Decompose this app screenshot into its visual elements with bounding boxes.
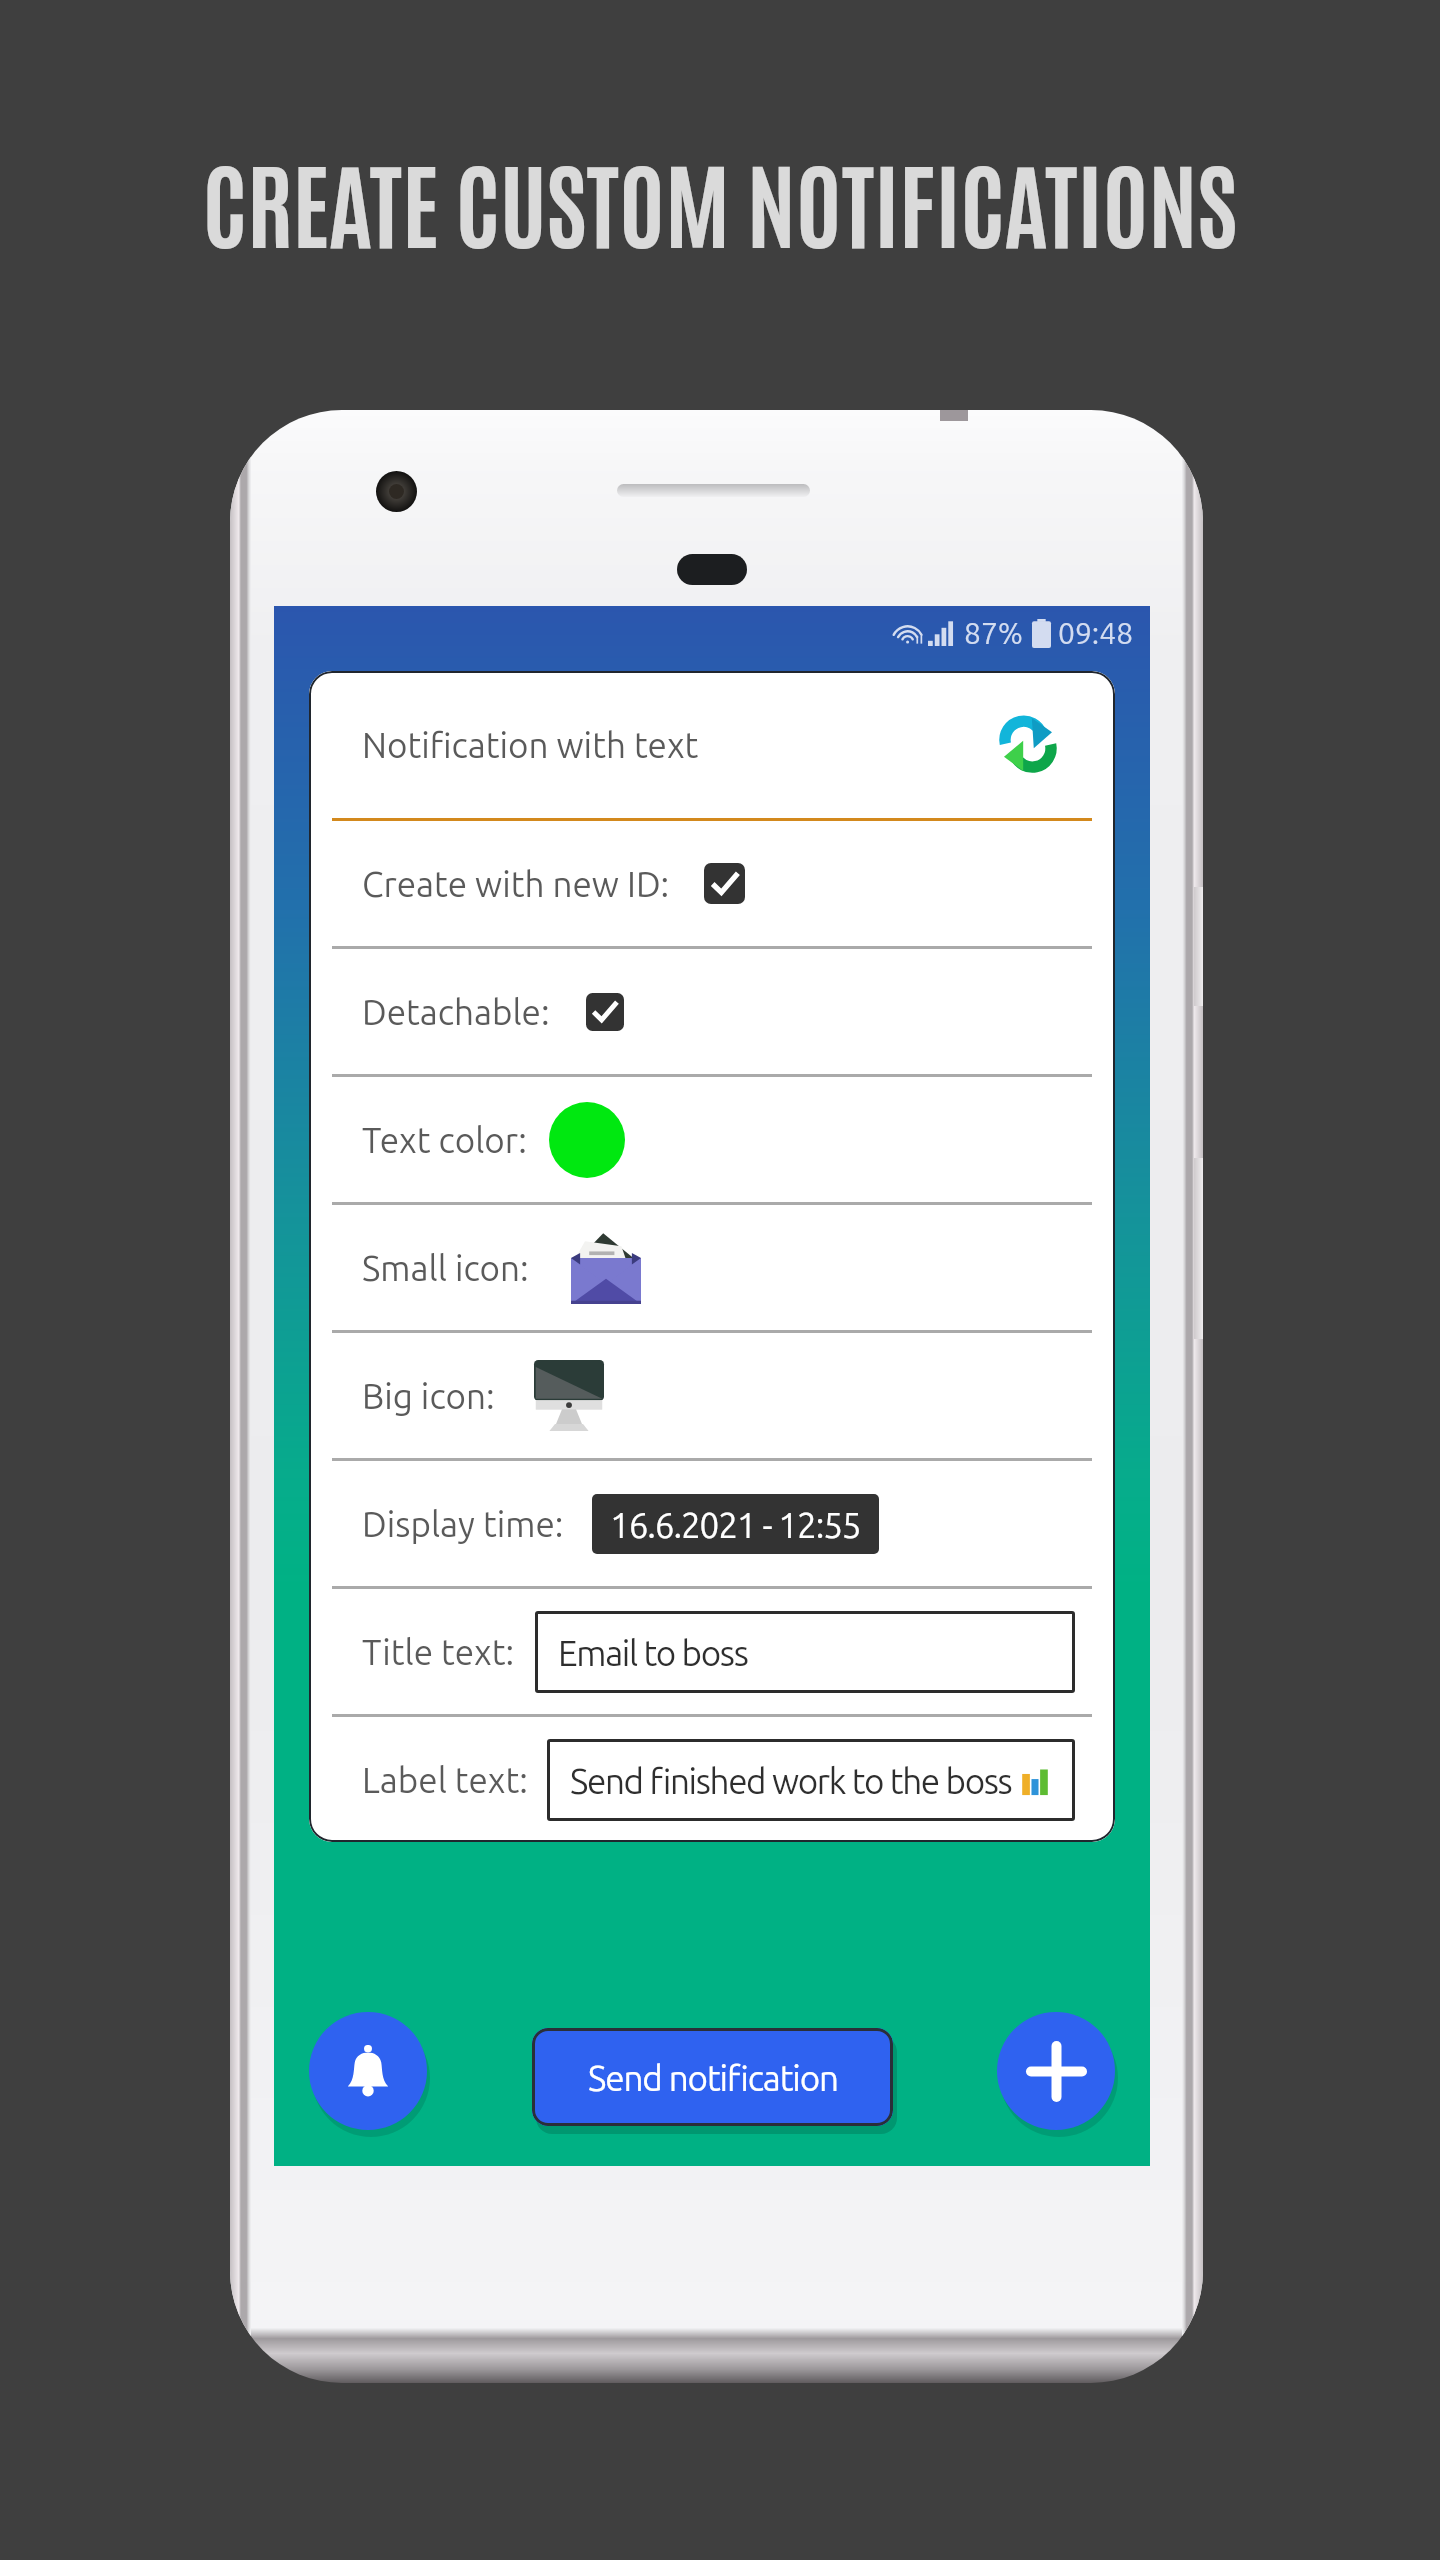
staticText: 87% xyxy=(964,616,1024,650)
button[interactable]: 16.6.2021 - 12:55 xyxy=(592,1494,879,1554)
staticText: Big icon: xyxy=(362,1376,495,1415)
button[interactable]: Detachable: xyxy=(309,949,1115,1074)
other: Sync xyxy=(1004,718,1052,771)
button[interactable]: Email to boss xyxy=(535,1611,1075,1693)
staticText: Send finished work to the boss xyxy=(570,1761,1019,1800)
button[interactable]: Label text: xyxy=(309,1717,1115,1842)
staticText: Email to boss xyxy=(558,1633,748,1672)
staticText: Send notification xyxy=(588,2058,838,2097)
button[interactable]: Display time: xyxy=(309,1461,1115,1586)
button[interactable]: Add notification xyxy=(997,2012,1115,2130)
staticText: Text color: xyxy=(362,1120,527,1159)
button[interactable]: Toggle xyxy=(586,993,624,1031)
button[interactable]: Send notification xyxy=(532,2028,893,2126)
staticText: 09:48 xyxy=(1058,616,1134,650)
button[interactable]: Small icon: xyxy=(309,1205,1115,1330)
button[interactable]: Create with new ID: xyxy=(309,821,1115,946)
staticText: Detachable: xyxy=(362,992,550,1031)
button[interactable]: Toggle xyxy=(704,863,745,904)
staticText: 16.6.2021 - 12:55 xyxy=(610,1505,861,1544)
button[interactable]: Show notifications xyxy=(309,2012,427,2130)
staticText: Title text: xyxy=(362,1632,515,1671)
button[interactable] xyxy=(549,1102,625,1178)
staticText: Create with new ID: xyxy=(362,864,670,903)
staticText: Label text: xyxy=(362,1760,528,1799)
staticText: CREATE CUSTOM NOTIFICATIONS xyxy=(202,139,1238,261)
button[interactable]: Send finished work to the boss xyxy=(547,1739,1075,1821)
button[interactable]: Title text: xyxy=(309,1589,1115,1714)
staticText: Small icon: xyxy=(362,1248,529,1287)
staticText: Display time: xyxy=(362,1504,564,1543)
button[interactable]: Text color: xyxy=(309,1077,1115,1202)
button[interactable]: Big icon: xyxy=(309,1333,1115,1458)
staticText: Notification with text xyxy=(362,725,699,764)
